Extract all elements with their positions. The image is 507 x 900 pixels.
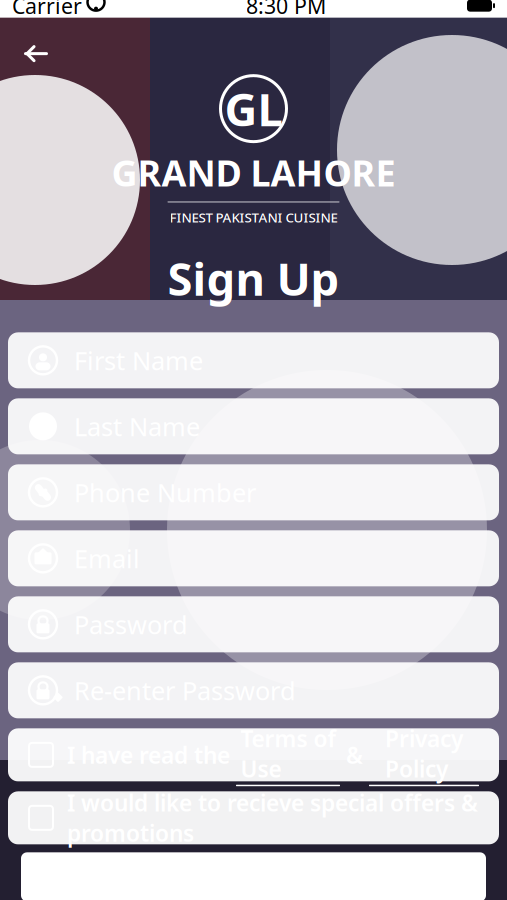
staticText: Last Name <box>74 409 200 443</box>
button[interactable]: Back <box>14 34 58 74</box>
staticText: GL <box>224 78 282 139</box>
button[interactable]: Phone Number <box>8 464 499 520</box>
button[interactable]: Password <box>8 596 499 652</box>
staticText: Phone Number <box>74 475 256 509</box>
staticText: 8:30 PM <box>246 0 326 20</box>
staticText: I have read the <box>67 740 236 770</box>
staticText: GRAND LAHORE <box>111 149 395 196</box>
staticText: Sign Up <box>167 248 339 308</box>
staticText: I would like to recieve special offers &… <box>67 788 478 848</box>
button[interactable]: Email <box>8 530 499 586</box>
staticText: Privacy Policy <box>385 723 463 784</box>
staticText: Carrier <box>12 0 82 20</box>
button[interactable]: I would like to recieve special offers &… <box>8 791 499 844</box>
staticText: FINEST PAKISTANI CUISINE <box>169 208 337 226</box>
button[interactable]: I have read the <box>8 728 499 781</box>
button[interactable]: Last Name <box>8 398 499 454</box>
staticText: First Name <box>74 343 203 377</box>
staticText: & <box>340 740 369 770</box>
staticText: Email <box>74 541 140 575</box>
button[interactable]: CONTINUE <box>21 852 486 900</box>
staticText: Password <box>74 607 188 641</box>
button[interactable]: First Name <box>8 332 499 388</box>
staticText: Terms of Use <box>240 723 335 784</box>
button[interactable]: Re-enter Password <box>8 662 499 718</box>
staticText: Re-enter Password <box>74 673 296 707</box>
